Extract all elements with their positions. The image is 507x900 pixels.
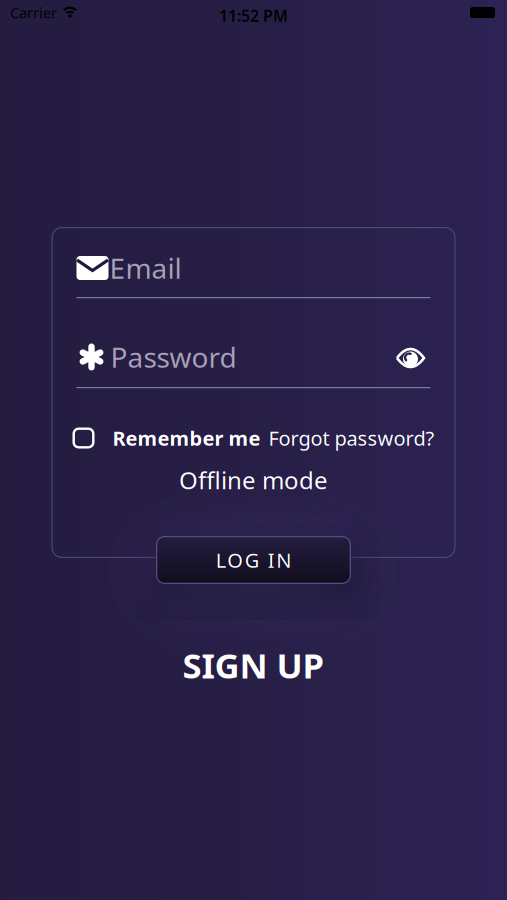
- button[interactable]: Email: [76, 245, 430, 291]
- button[interactable]: Forgot password?: [268, 425, 434, 451]
- staticText: SIGN UP: [182, 642, 324, 688]
- staticText: Forgot password?: [268, 425, 434, 451]
- staticText: Password: [110, 338, 236, 376]
- staticText: 11:52 PM: [219, 5, 288, 26]
- staticText: Remember me: [112, 425, 260, 451]
- staticText: Offline mode: [179, 464, 328, 496]
- button[interactable]: Password: [76, 334, 430, 380]
- staticText: Email: [109, 249, 181, 287]
- button[interactable]: Offline mode: [179, 464, 328, 496]
- button[interactable]: LOG IN: [156, 536, 351, 584]
- button[interactable]: Remember me: [72, 425, 260, 451]
- staticText: Carrier: [10, 3, 57, 22]
- button[interactable]: Show password: [391, 344, 429, 373]
- button[interactable]: SIGN UP: [182, 642, 324, 688]
- staticText: LOG IN: [216, 547, 291, 573]
